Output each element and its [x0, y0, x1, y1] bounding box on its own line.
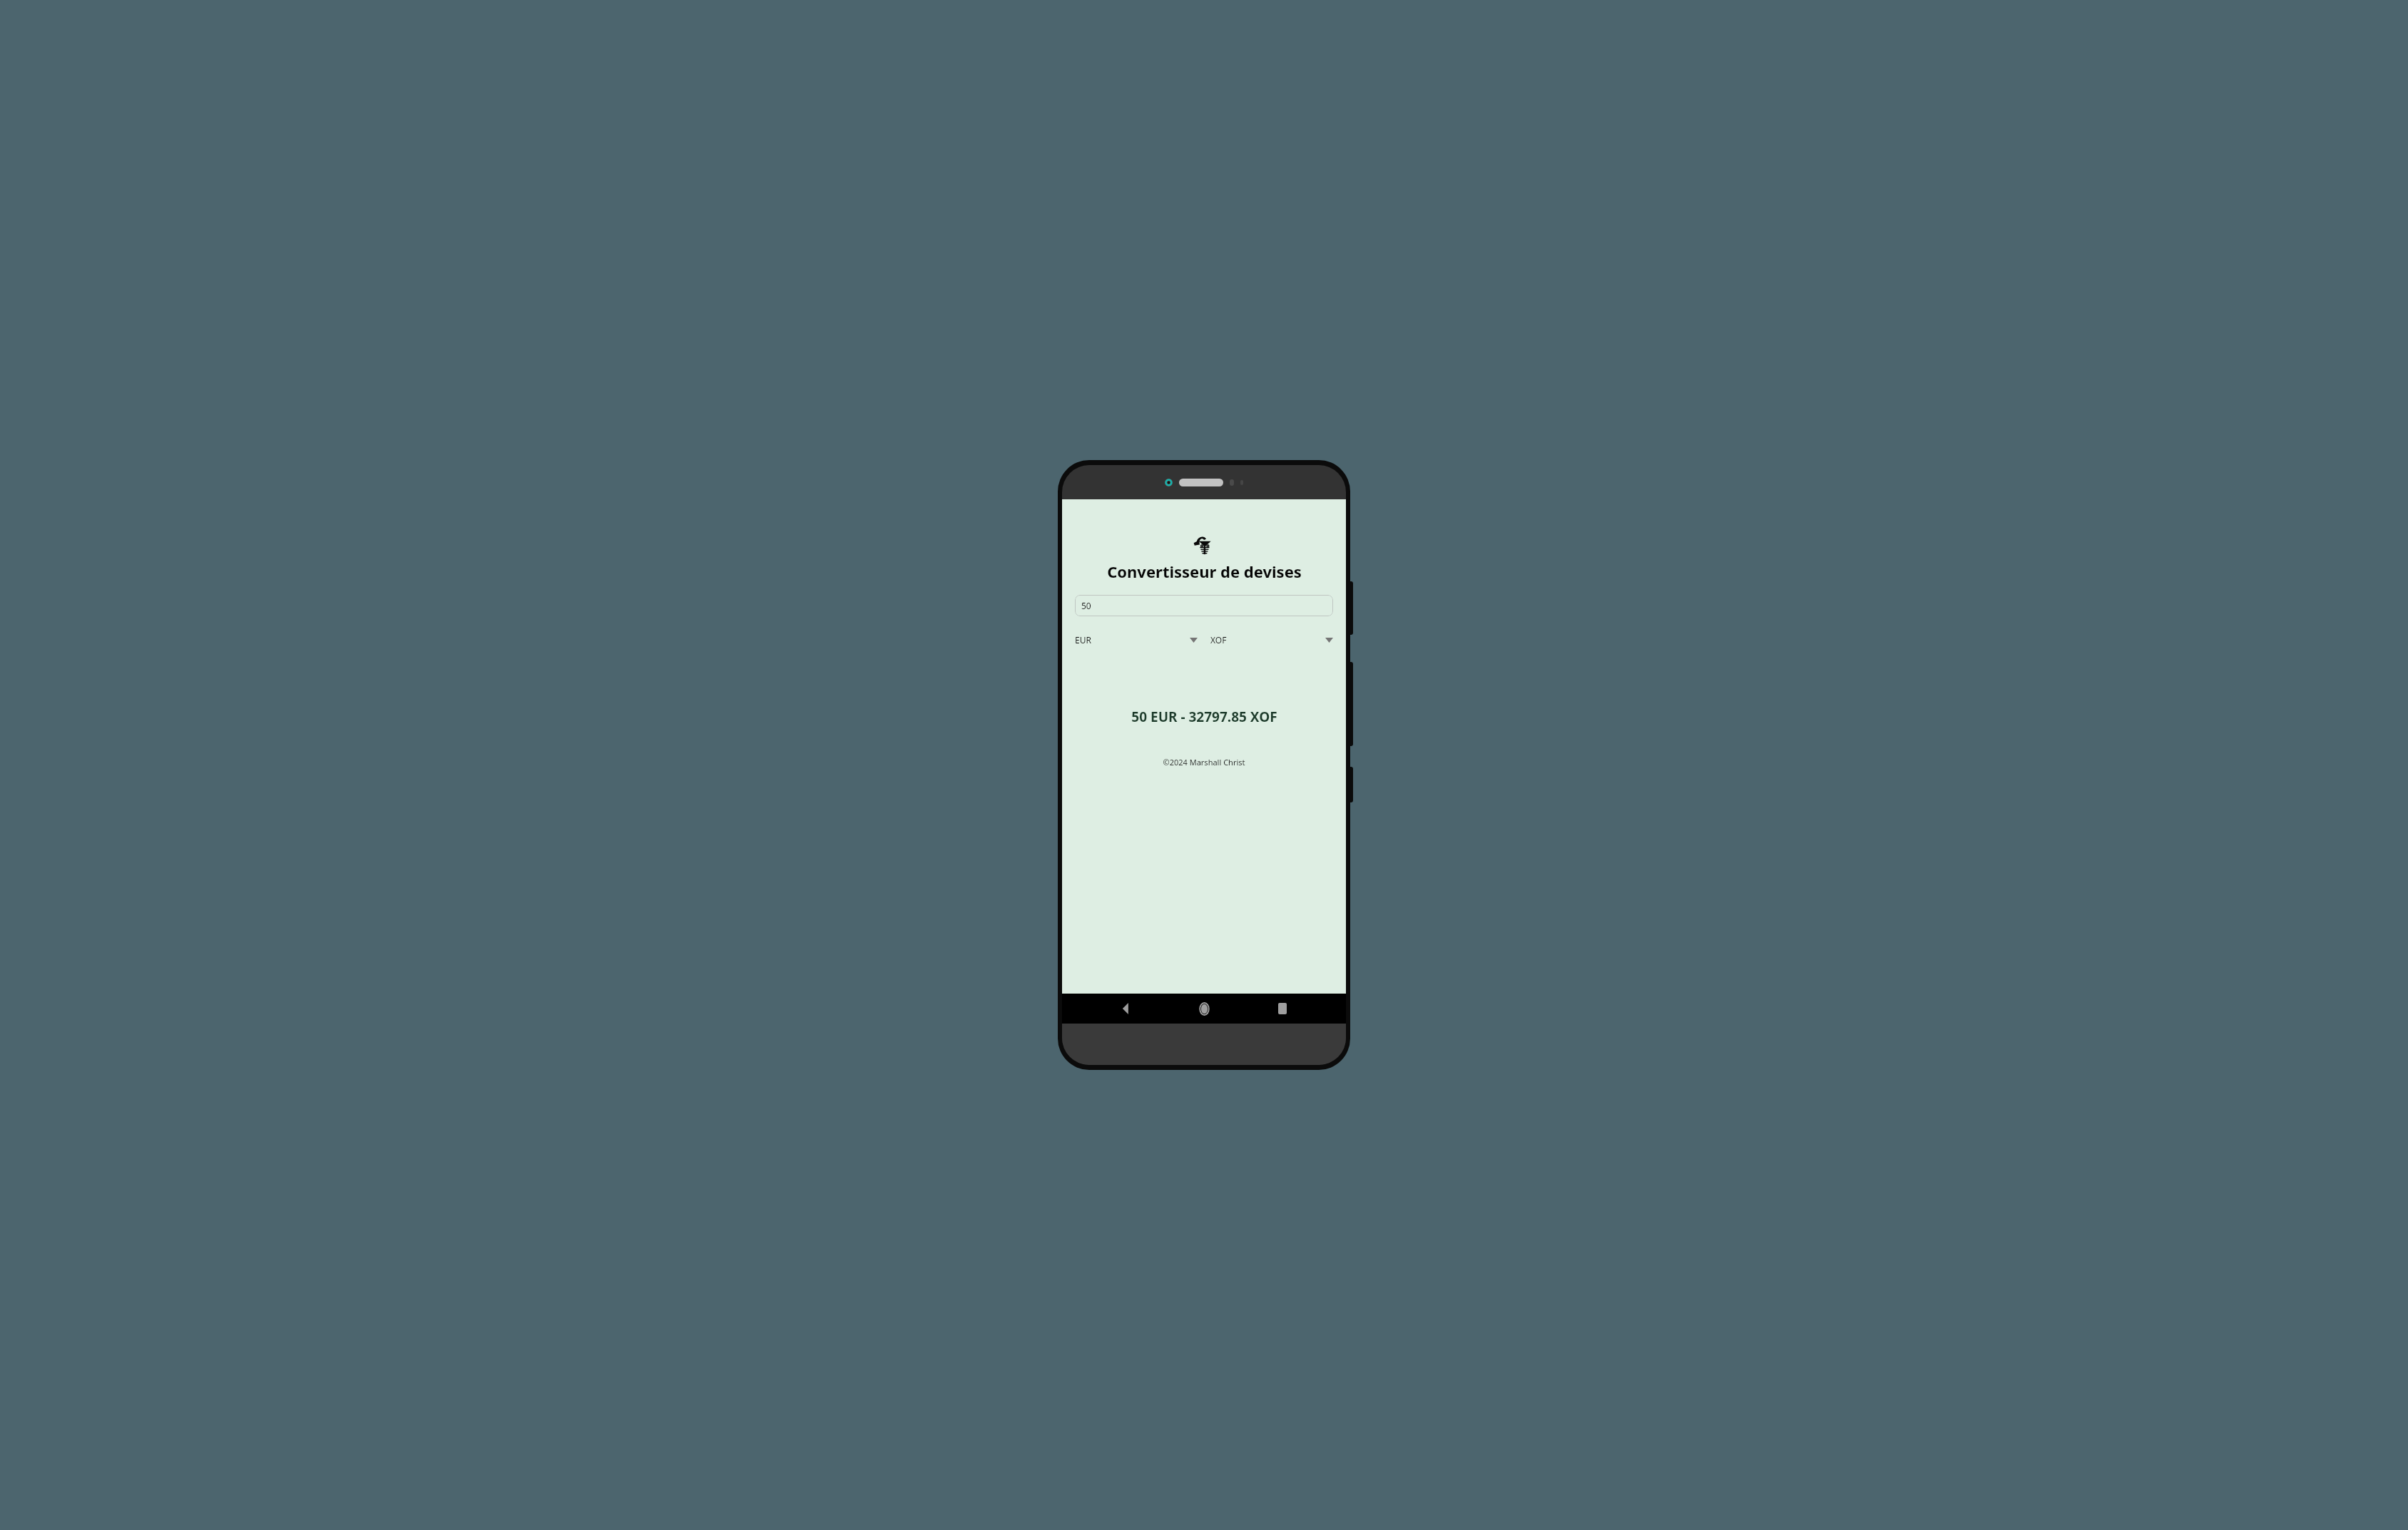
staticText: ©2024 Marshall Christ — [1163, 757, 1245, 767]
button[interactable]: EUR — [1072, 631, 1200, 649]
staticText: 50 EUR - 32797.85 XOF — [1131, 708, 1277, 726]
other: Logo — [1192, 532, 1216, 556]
button[interactable]: Recent apps — [1268, 994, 1297, 1023]
staticText: EUR — [1075, 634, 1091, 646]
staticText: XOF — [1210, 634, 1227, 646]
button[interactable]: XOF — [1208, 631, 1336, 649]
button[interactable]: Back — [1112, 994, 1141, 1023]
staticText: 50 — [1081, 600, 1091, 611]
button[interactable]: Home — [1190, 994, 1218, 1023]
staticText: Convertisseur de devises — [1107, 561, 1302, 582]
button[interactable]: 50 — [1075, 595, 1333, 616]
